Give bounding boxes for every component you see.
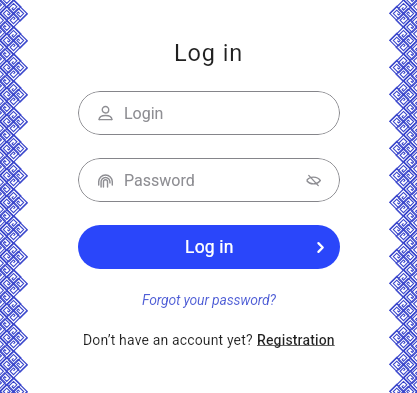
staticText: Password bbox=[124, 171, 195, 190]
button[interactable]: Login bbox=[78, 91, 340, 135]
button[interactable]: Forgot your password? bbox=[142, 292, 276, 308]
staticText: Login bbox=[124, 104, 164, 123]
staticText: Log in bbox=[174, 39, 244, 67]
button[interactable]: Password bbox=[78, 158, 340, 202]
staticText: Don’t have an account yet? bbox=[83, 332, 257, 348]
button[interactable]: Show password bbox=[303, 170, 323, 190]
button[interactable]: Registration bbox=[257, 332, 335, 348]
button[interactable]: Log in bbox=[78, 225, 340, 269]
staticText: Log in bbox=[185, 237, 234, 258]
